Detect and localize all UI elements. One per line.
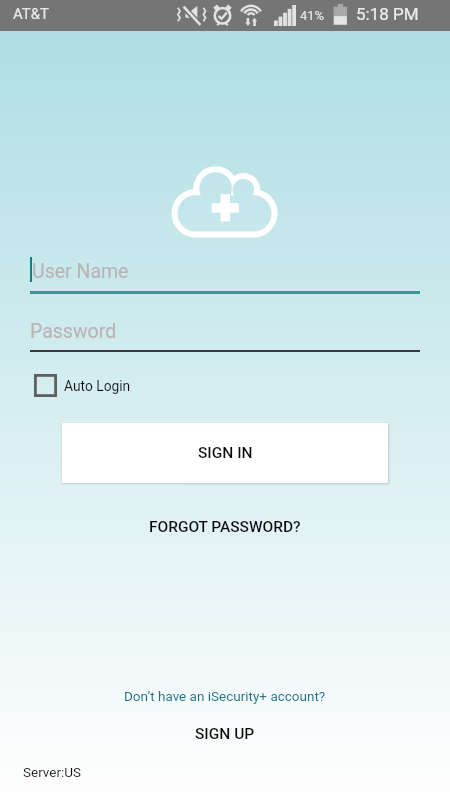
other: Signal strength — [274, 5, 296, 26]
staticText: AT&T — [13, 5, 50, 23]
other: Wi-Fi — [240, 4, 262, 26]
staticText: Password — [30, 320, 117, 343]
staticText: FORGOT PASSWORD? — [149, 518, 301, 536]
other: Battery — [333, 4, 348, 25]
button[interactable]: Auto Login — [34, 374, 131, 397]
staticText: 41% — [300, 8, 325, 23]
button[interactable]: SIGN UP — [0, 721, 450, 747]
staticText: Don’t have an iSecurity+ account? — [124, 688, 326, 704]
other: Alarm set — [212, 4, 233, 25]
staticText: Auto Login — [64, 378, 131, 394]
staticText: SIGN IN — [198, 444, 253, 462]
staticText: SIGN UP — [195, 725, 255, 743]
staticText: Server:US — [23, 764, 82, 780]
button[interactable]: SIGN IN — [62, 423, 388, 483]
other: Silent mode — [177, 4, 207, 25]
staticText: 5:18 PM — [356, 4, 419, 24]
button[interactable]: FORGOT PASSWORD? — [0, 510, 450, 544]
staticText: User Name — [32, 260, 129, 283]
